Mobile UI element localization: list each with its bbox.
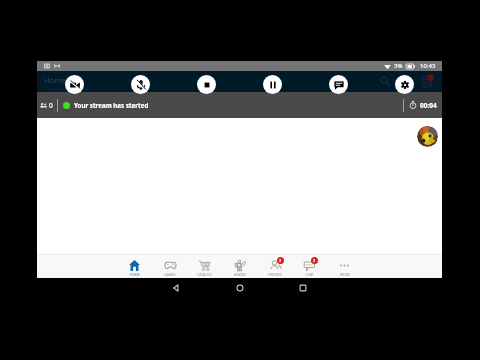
button[interactable]: Back [168, 280, 184, 296]
staticText: 10:43 [420, 62, 436, 70]
button[interactable]: MORE [327, 255, 362, 278]
staticText: 0 [49, 101, 53, 110]
button[interactable]: Stop camera [65, 75, 84, 94]
staticText: AVATAR [234, 272, 246, 277]
button[interactable]: Profile [417, 126, 438, 147]
staticText: Your stream has started [74, 101, 149, 109]
button[interactable]: Settings [395, 75, 414, 94]
staticText: Home [44, 75, 66, 85]
button[interactable]: Stop stream [197, 75, 216, 94]
staticText: MORE [340, 272, 350, 277]
button[interactable]: GAMES [152, 255, 187, 278]
staticText: 3% [394, 62, 403, 70]
staticText: FRIENDS [268, 272, 282, 277]
button[interactable]: 2 [292, 255, 327, 278]
staticText: 2 [313, 258, 316, 263]
button[interactable]: AVATAR [222, 255, 257, 278]
button[interactable]: Home [232, 280, 248, 296]
button[interactable]: Mute microphone [131, 75, 150, 94]
staticText: 00:04 [420, 101, 437, 110]
staticText: CHAT [305, 272, 314, 277]
button[interactable]: Pause stream [263, 75, 282, 94]
staticText: GAMES [164, 272, 176, 277]
staticText: Thousands of games [44, 86, 88, 92]
staticText: HOME [129, 272, 140, 277]
staticText: 2 [279, 258, 282, 263]
button[interactable]: Recent apps [295, 280, 311, 296]
button[interactable]: 2 [257, 255, 292, 278]
button[interactable]: Chat [329, 75, 348, 94]
button[interactable]: CATALOG [187, 255, 222, 278]
staticText: CATALOG [197, 272, 212, 277]
button[interactable]: HOME [117, 255, 152, 278]
